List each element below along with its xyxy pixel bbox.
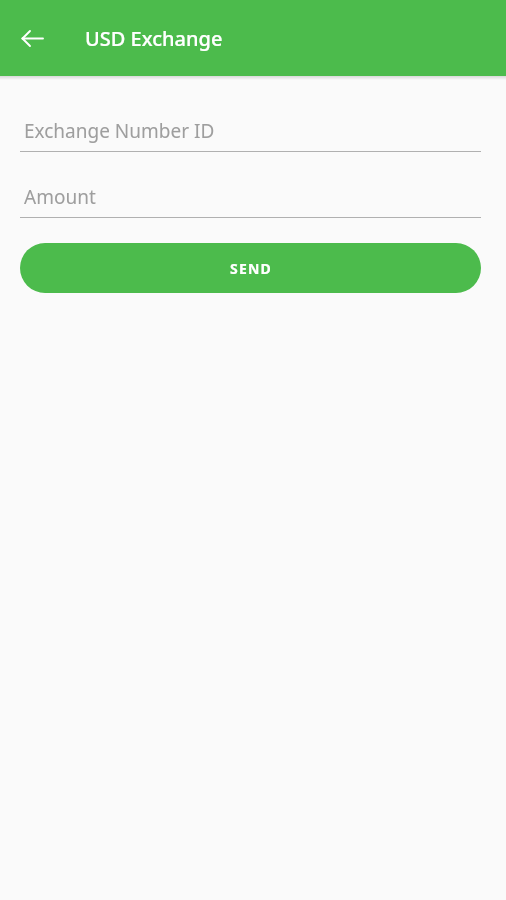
button[interactable]: SEND bbox=[20, 243, 481, 293]
button[interactable]: Back bbox=[10, 16, 54, 60]
button[interactable]: Exchange Number ID bbox=[20, 111, 481, 152]
staticText: SEND bbox=[230, 259, 272, 278]
staticText: Amount bbox=[24, 184, 96, 210]
staticText: Exchange Number ID bbox=[24, 118, 215, 144]
staticText: USD Exchange bbox=[85, 25, 223, 52]
button[interactable]: Amount bbox=[20, 177, 481, 218]
